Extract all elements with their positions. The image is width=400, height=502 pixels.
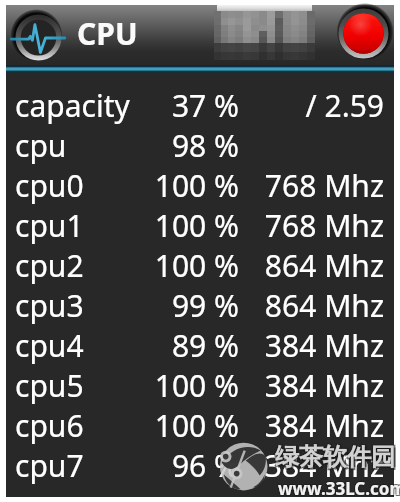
button[interactable]: cpu7 <box>6 445 394 485</box>
staticText: www.33LC.com <box>277 476 400 499</box>
staticText: cpu5 <box>15 365 160 405</box>
staticText: cpu2 <box>15 245 160 285</box>
staticText: / 2.59 <box>229 85 384 125</box>
button[interactable]: capacity <box>6 85 394 125</box>
button[interactable]: cpu <box>6 125 394 165</box>
staticText: cpu3 <box>15 285 160 325</box>
staticText: 384 Mhz <box>229 405 384 445</box>
staticText: 100 % <box>151 205 239 245</box>
button[interactable]: cpu1 <box>6 205 394 245</box>
staticText: 绿茶软件园 <box>275 442 395 472</box>
button[interactable]: cpu3 <box>6 285 394 325</box>
staticText: 89 % <box>151 325 239 365</box>
staticText: 768 Mhz <box>229 165 384 205</box>
staticText: 864 Mhz <box>229 285 384 325</box>
button[interactable]: cpu2 <box>6 245 394 285</box>
staticText <box>229 125 384 165</box>
staticText: 100 % <box>151 365 239 405</box>
staticText: www.33LC.com <box>278 477 400 500</box>
staticText: 绿茶软件园 <box>274 444 394 474</box>
button[interactable]: cpu6 <box>6 405 394 445</box>
button[interactable]: cpu4 <box>6 325 394 365</box>
button[interactable]: CPU monitor <box>8 7 68 67</box>
staticText: 100 % <box>151 405 239 445</box>
staticText: cpu7 <box>15 445 160 485</box>
staticText: capacity <box>15 85 160 125</box>
staticText: 37 % <box>151 85 239 125</box>
button[interactable]: Stop monitoring <box>327 0 391 64</box>
staticText: 100 % <box>151 165 239 205</box>
staticText: 768 Mhz <box>229 205 384 245</box>
staticText: 384 Mhz <box>229 445 384 485</box>
staticText: 99 % <box>151 285 239 325</box>
staticText: cpu4 <box>15 325 160 365</box>
button[interactable]: cpu0 <box>6 165 394 205</box>
staticText: cpu <box>15 125 160 165</box>
staticText: www.33LC.com <box>277 478 400 501</box>
staticText: cpu0 <box>15 165 160 205</box>
staticText: 100 % <box>151 245 239 285</box>
staticText: cpu1 <box>15 205 160 245</box>
staticText: 绿茶软件园 <box>277 441 397 471</box>
staticText: www.33LC.com <box>279 478 400 501</box>
staticText: 绿茶软件园 <box>274 441 394 471</box>
button[interactable]: cpu5 <box>6 365 394 405</box>
staticText: CPU <box>77 13 138 54</box>
staticText: 96 % <box>151 445 239 485</box>
staticText: 384 Mhz <box>229 365 384 405</box>
staticText: 864 Mhz <box>229 245 384 285</box>
staticText: cpu6 <box>15 405 160 445</box>
staticText: 绿茶软件园 <box>277 444 397 474</box>
staticText: www.33LC.com <box>279 476 400 499</box>
staticText: 384 Mhz <box>229 325 384 365</box>
staticText: 98 % <box>151 125 239 165</box>
